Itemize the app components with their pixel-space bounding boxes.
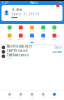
staticText: 9:41 <box>2 1 9 5</box>
staticText: Me <box>53 96 55 98</box>
staticText: Hi, Alex <box>11 8 21 11</box>
button[interactable]: Cashback earned <box>0 54 64 58</box>
button[interactable]: Scan <box>15 25 26 32</box>
staticText: Balance $1,284.00 <box>11 12 39 16</box>
button[interactable]: Pay <box>4 25 15 32</box>
staticText: Wallet <box>30 1 38 5</box>
staticText: Home <box>8 96 12 98</box>
button[interactable]: Rewards <box>15 34 26 40</box>
button[interactable]: Me <box>49 91 60 100</box>
button[interactable]: Monthly statement <box>0 45 64 50</box>
staticText: Loans <box>41 38 46 40</box>
staticText: Ready to view <box>7 48 16 50</box>
button[interactable]: Bills <box>49 25 60 32</box>
staticText: Rewards <box>17 38 24 40</box>
staticText: Monthly statement <box>7 45 32 48</box>
button[interactable]: Top up <box>4 34 15 40</box>
staticText: 👤 <box>4 11 9 15</box>
staticText: Pay <box>8 30 11 32</box>
staticText: Card delivered <box>7 49 28 52</box>
staticText: Send <box>41 30 45 32</box>
staticText: + $4.20 <box>7 57 12 59</box>
staticText: Pay <box>19 96 22 98</box>
button[interactable]: Cards <box>26 25 38 32</box>
button[interactable]: Scan <box>26 91 38 100</box>
staticText: Top up <box>7 38 12 40</box>
staticText: Activate now <box>7 53 15 55</box>
button[interactable]: Card delivered <box>0 50 64 54</box>
button[interactable]: Invest <box>26 34 38 40</box>
button[interactable]: Pay <box>15 91 26 100</box>
button[interactable]: Send <box>38 25 49 32</box>
button[interactable]: Loans <box>38 34 49 40</box>
staticText: Scan <box>30 96 34 98</box>
staticText: Shop <box>41 96 45 98</box>
staticText: Scan <box>19 30 23 32</box>
button[interactable]: Home <box>4 91 15 100</box>
button[interactable]: More <box>49 34 60 40</box>
staticText: ••• <box>59 1 62 5</box>
staticText: Invest <box>30 38 34 40</box>
staticText: More <box>52 38 56 40</box>
staticText: Activate <box>52 50 62 54</box>
staticText: Cashback earned <box>7 53 29 57</box>
staticText: Cards <box>29 30 34 32</box>
staticText: Open <box>54 46 62 49</box>
staticText: Bills <box>53 30 55 32</box>
button[interactable]: Shop <box>38 91 49 100</box>
